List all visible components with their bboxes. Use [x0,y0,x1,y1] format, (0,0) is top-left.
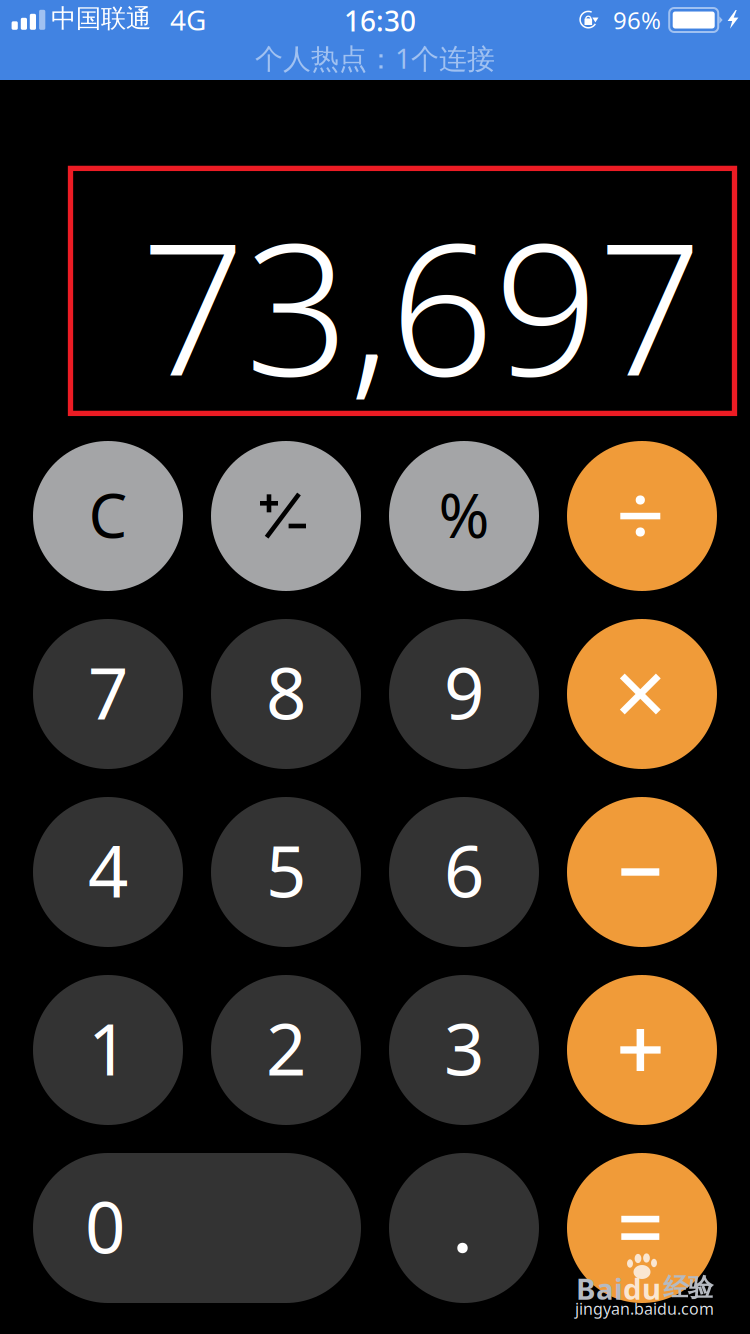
staticText: 5 [266,823,306,917]
staticText: 2 [266,1001,306,1095]
button[interactable]: 3 [389,975,539,1125]
button[interactable]: C [33,441,183,591]
staticText: 经验 [663,1272,713,1303]
button[interactable]: 4 [33,797,183,947]
staticText: 8 [266,645,306,739]
staticText: 中国联通 [51,3,151,34]
button[interactable]: Equals [567,1153,717,1303]
staticText: 1 [88,1001,128,1095]
button[interactable]: 7 [33,619,183,769]
staticText: 73,697 [141,183,702,426]
button[interactable]: Multiply [567,619,717,769]
staticText: 个人热点：1个连接 [255,39,495,77]
button[interactable]: 5 [211,797,361,947]
staticText: du [623,1269,661,1308]
staticText: 3 [444,1001,484,1095]
staticText: 4 [88,823,128,917]
button[interactable]: 个人热点：1个连接 [0,38,750,78]
button[interactable]: 0 [33,1153,361,1303]
button[interactable]: % [389,441,539,591]
staticText: Bai [576,1269,623,1308]
button[interactable]: Divide [567,441,717,591]
button[interactable]: 1 [33,975,183,1125]
button[interactable]: 6 [389,797,539,947]
staticText: 0 [85,1179,125,1273]
staticText: 9 [444,645,484,739]
button[interactable]: Minus [567,797,717,947]
button[interactable]: Decimal point [389,1153,539,1303]
staticText: 4G [170,1,206,38]
staticText: % [438,473,489,555]
button[interactable]: 9 [389,619,539,769]
staticText: jingyan.baidu.com [575,1298,714,1319]
button[interactable]: 2 [211,975,361,1125]
button[interactable]: Plus [567,975,717,1125]
staticText: 16:30 [344,2,416,39]
button[interactable]: 8 [211,619,361,769]
button[interactable]: Plus Minus [211,441,361,591]
staticText: C [88,473,127,555]
staticText: 7 [88,645,128,739]
staticText: 96% [613,4,661,36]
staticText: 6 [444,823,484,917]
